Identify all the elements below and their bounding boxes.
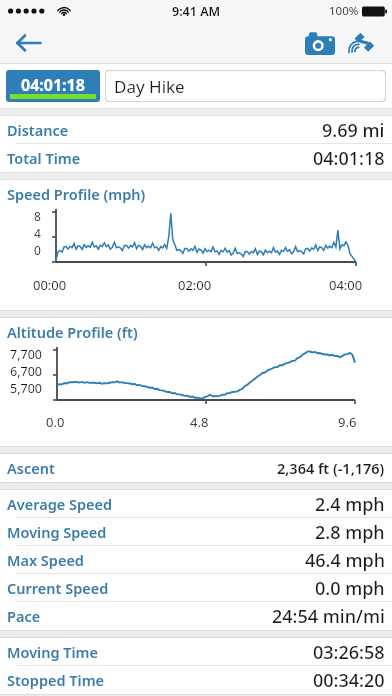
button[interactable]: Day Hike [105,70,386,102]
staticText: 0.0 [46,413,65,431]
staticText: 02:00 [178,276,212,294]
staticText: Pace [7,606,41,626]
staticText: Altitude Profile (ft) [7,322,138,342]
staticText: 6,700 [10,363,42,380]
staticText: Average Speed [7,494,113,514]
staticText: 9.6 [338,413,357,431]
button[interactable]: Total Time [0,144,392,172]
staticText: Total Time [7,148,81,168]
staticText: 9:41 AM [172,3,221,20]
staticText: 9.69 mi [322,118,385,143]
staticText: 5,700 [10,380,42,397]
button[interactable]: Average Speed [0,490,392,518]
button[interactable]: Take photo [298,24,342,62]
staticText: 46.4 mph [305,548,385,573]
staticText: 04:01:18 [313,146,385,171]
staticText: Distance [7,120,69,140]
staticText: Ascent [7,458,55,478]
button[interactable]: Stopped Time [0,666,392,694]
staticText: 2.4 mph [315,492,385,517]
staticText: Max Speed [7,550,84,570]
staticText: Current Speed [7,578,109,598]
staticText: 100% [329,3,359,19]
staticText: 04:01:18 [21,74,85,96]
staticText: Stopped Time [7,670,105,690]
staticText: 4 [34,225,41,241]
staticText: 2.8 mph [315,520,385,545]
staticText: 04:00 [329,276,363,294]
button[interactable]: Current Speed [0,574,392,602]
button[interactable]: Max Speed [0,546,392,574]
button[interactable]: Back [8,24,50,62]
button[interactable]: 04:01:18 [6,70,100,102]
staticText: 0 [34,242,41,258]
staticText: 24:54 min/mi [272,604,385,629]
staticText: 00:34:20 [313,668,385,693]
button[interactable]: Distance [0,116,392,144]
staticText: 0.0 mph [315,576,385,601]
button[interactable]: Pace [0,602,392,630]
button[interactable]: GPS satellite status [342,24,386,62]
button[interactable]: Moving Speed [0,518,392,546]
staticText: Day Hike [114,75,185,98]
staticText: 4.8 [190,413,209,431]
button[interactable]: Ascent [0,454,392,482]
staticText: 7,700 [10,346,42,363]
staticText: 03:26:58 [313,640,385,665]
staticText: 2,364 ft (-1,176) [277,458,385,478]
button[interactable]: Moving Time [0,638,392,666]
staticText: 00:00 [33,276,67,294]
staticText: 8 [34,208,41,224]
staticText: Moving Time [7,642,99,662]
staticText: Speed Profile (mph) [7,184,146,204]
staticText: Moving Speed [7,522,107,542]
